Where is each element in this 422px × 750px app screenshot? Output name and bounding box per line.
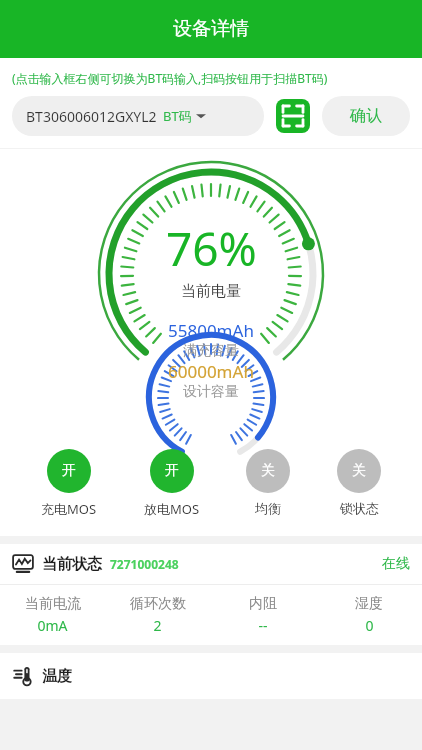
staticText: -- <box>258 616 268 635</box>
staticText: 充电MOS <box>41 500 97 518</box>
staticText: 湿度 <box>355 595 383 613</box>
staticText: 确认 <box>350 106 382 126</box>
staticText: 关 <box>261 462 275 480</box>
staticText: BT306006012GXYL2 <box>26 107 157 126</box>
staticText: 内阻 <box>249 595 277 613</box>
staticText: 当前状态 <box>42 555 102 574</box>
button[interactable]: 开 <box>138 449 206 518</box>
staticText: 60000mAh <box>168 360 254 383</box>
staticText: 0mA <box>37 616 68 635</box>
staticText: 设备详情 <box>173 17 249 41</box>
staticText: 满充容量 <box>183 342 239 360</box>
staticText: 2 <box>153 616 162 635</box>
staticText: 7271000248 <box>110 556 179 572</box>
staticText: 循环次数 <box>130 595 186 613</box>
staticText: 0 <box>365 616 374 635</box>
staticText: 锁状态 <box>340 500 379 516</box>
staticText: 关 <box>352 462 366 480</box>
button[interactable]: 关 <box>331 449 387 516</box>
staticText: 开 <box>165 462 179 480</box>
staticText: 55800mAh <box>168 319 254 342</box>
staticText: 当前电量 <box>181 282 241 301</box>
button[interactable]: 确认 <box>322 96 410 136</box>
staticText: BT码 <box>163 107 192 125</box>
staticText: 开 <box>62 462 76 480</box>
staticText: 当前电流 <box>25 595 81 613</box>
staticText: 温度 <box>42 667 72 686</box>
button[interactable]: 关 <box>240 449 296 516</box>
button[interactable]: 开 <box>35 449 103 518</box>
staticText: 均衡 <box>255 500 281 516</box>
staticText: 设计容量 <box>183 383 239 401</box>
staticText: 在线 <box>382 555 410 573</box>
staticText: (点击输入框右侧可切换为BT码输入,扫码按钮用于扫描BT码) <box>12 70 328 86</box>
staticText: 76% <box>166 217 257 280</box>
button[interactable]: BT306006012GXYL2 <box>12 96 264 136</box>
staticText: 放电MOS <box>144 500 200 518</box>
button[interactable]: 扫码 <box>276 99 310 133</box>
